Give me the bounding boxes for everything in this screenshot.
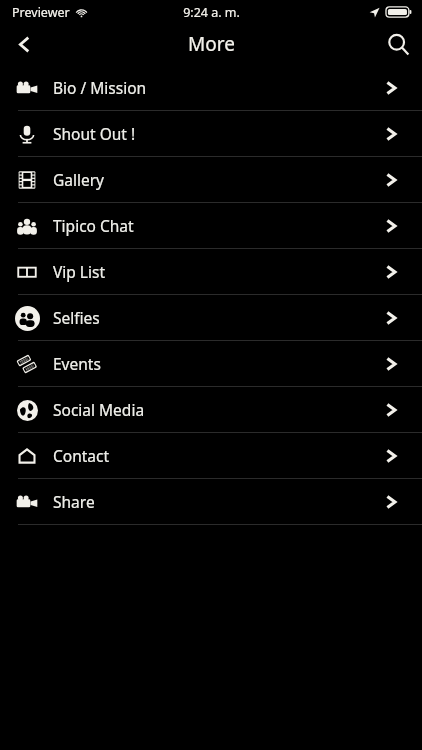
staticText: Vip List (53, 261, 106, 282)
button[interactable]: Contact (0, 433, 422, 478)
button[interactable]: Search (374, 24, 422, 65)
button[interactable]: Selfies (0, 295, 422, 340)
staticText: Events (53, 353, 101, 374)
staticText: 9:24 a. m. (183, 4, 240, 21)
staticText: Contact (53, 445, 110, 466)
staticText: Previewer (12, 4, 70, 21)
button[interactable]: Shout Out ! (0, 111, 422, 156)
staticText: Gallery (53, 169, 105, 190)
button[interactable]: Tipico Chat (0, 203, 422, 248)
staticText: Shout Out ! (53, 123, 136, 144)
button[interactable]: Vip List (0, 249, 422, 294)
button[interactable]: Gallery (0, 157, 422, 202)
staticText: Tipico Chat (53, 215, 134, 236)
staticText: Share (53, 491, 95, 512)
button[interactable]: Bio / Mission (0, 65, 422, 110)
staticText: Bio / Mission (53, 77, 147, 98)
staticText: More (188, 31, 235, 57)
button[interactable]: Share (0, 479, 422, 524)
button[interactable]: Back (0, 24, 48, 65)
staticText: Selfies (53, 307, 100, 328)
button[interactable]: Social Media (0, 387, 422, 432)
button[interactable]: Events (0, 341, 422, 386)
staticText: Social Media (53, 399, 145, 420)
